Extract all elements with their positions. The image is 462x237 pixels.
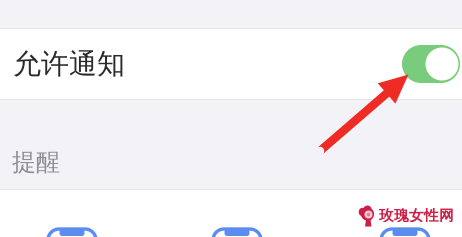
button[interactable]: 允许通知 xyxy=(0,29,462,99)
button[interactable]: 锁定屏幕 xyxy=(48,229,96,237)
staticText: 玫瑰女性网 xyxy=(379,206,454,224)
staticText: 允许通知 xyxy=(13,47,125,81)
button[interactable]: 通知中心 xyxy=(213,229,261,237)
staticText: 提醒 xyxy=(12,147,60,177)
button[interactable]: 横幅 xyxy=(381,229,429,237)
